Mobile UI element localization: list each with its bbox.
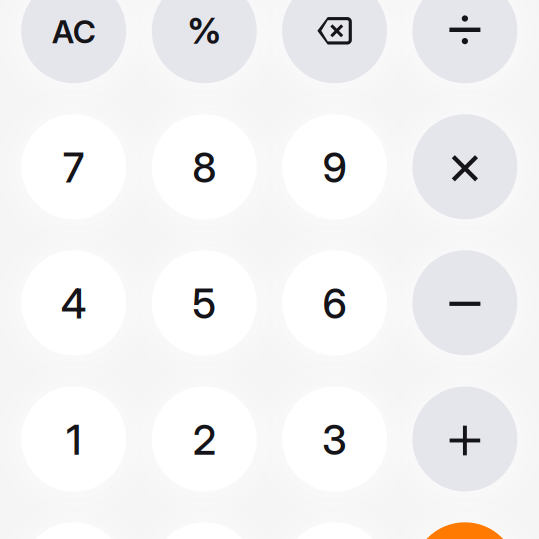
button[interactable]: Equals [412, 522, 517, 539]
staticText: 5 [192, 279, 216, 328]
button[interactable]: 4 [21, 250, 126, 355]
staticText: 8 [192, 143, 216, 192]
button[interactable]: Multiply [412, 114, 517, 219]
staticText: 3 [322, 415, 347, 465]
button[interactable]: 1 [21, 386, 126, 491]
staticText: 9 [323, 143, 347, 192]
button[interactable]: 8 [152, 114, 257, 219]
button[interactable]: % [152, 0, 257, 83]
staticText: 7 [63, 143, 85, 192]
button[interactable]: Delete [282, 0, 387, 83]
button[interactable]: Add [412, 386, 517, 491]
button[interactable]: Divide [412, 0, 517, 83]
staticText: 6 [323, 279, 347, 328]
button[interactable]: 7 [21, 114, 126, 219]
staticText: % [187, 9, 221, 52]
button[interactable]: AC [21, 0, 126, 83]
staticText: 4 [61, 279, 87, 328]
button[interactable]: 9 [282, 114, 387, 219]
button[interactable]: 0 [152, 522, 257, 539]
button[interactable]: 3 [282, 386, 387, 491]
staticText: 1 [66, 415, 81, 465]
staticText: 2 [193, 415, 216, 465]
button[interactable]: 2 [152, 386, 257, 491]
button[interactable]: 5 [152, 250, 257, 355]
button[interactable]: 00 [282, 522, 387, 539]
button[interactable]: Subtract [412, 250, 517, 355]
staticText: AC [52, 13, 96, 51]
button[interactable]: 6 [282, 250, 387, 355]
button[interactable]: . [21, 522, 126, 539]
